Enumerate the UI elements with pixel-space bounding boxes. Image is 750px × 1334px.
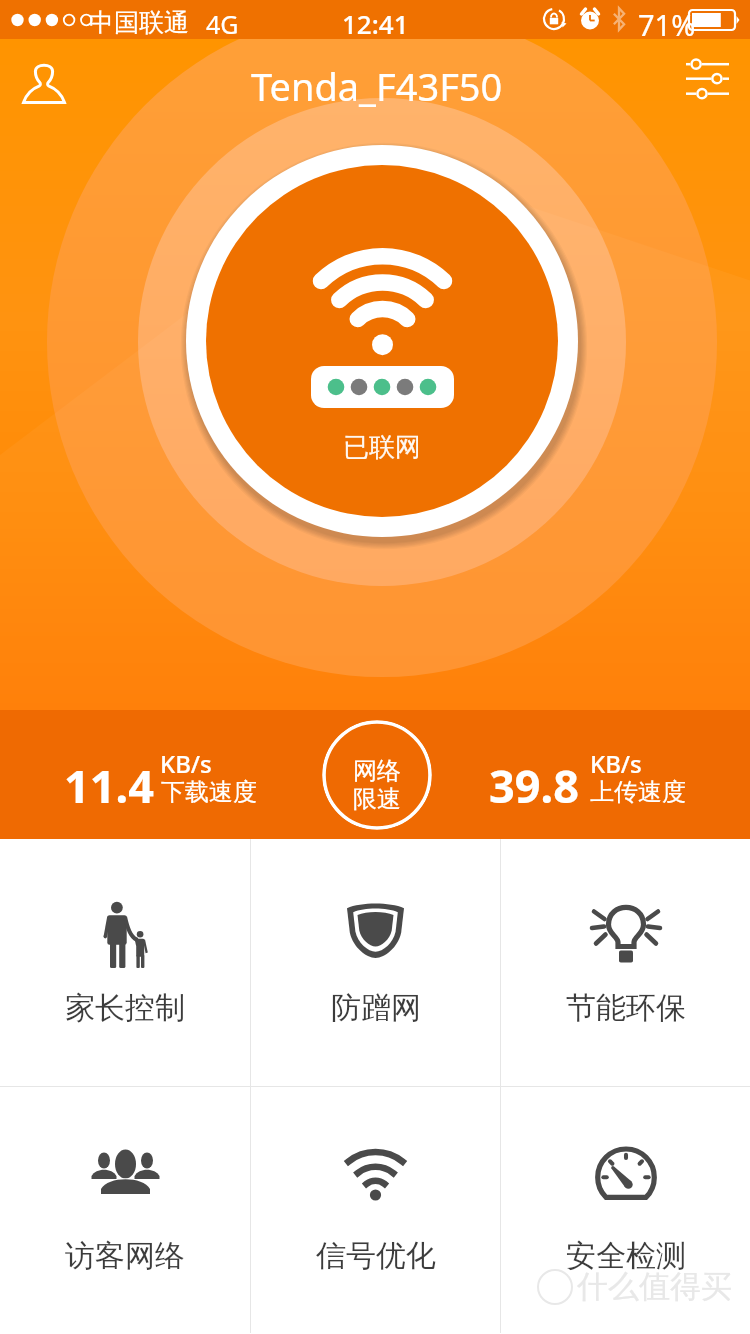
staticText: 节能环保 bbox=[566, 989, 686, 1027]
staticText: 安全检测 bbox=[566, 1237, 686, 1275]
button[interactable]: 防蹭网 bbox=[251, 839, 500, 1086]
staticText: 限速 bbox=[353, 784, 401, 814]
staticText: 71% bbox=[638, 5, 696, 44]
button[interactable]: 信号优化 bbox=[251, 1087, 500, 1333]
staticText: 什么值得买 bbox=[577, 1267, 732, 1306]
staticText: 家长控制 bbox=[65, 989, 185, 1027]
staticText: 中国联通 bbox=[89, 7, 189, 38]
staticText: 已联网 bbox=[343, 431, 421, 464]
staticText: 11.4 bbox=[64, 755, 154, 816]
button[interactable]: 11.4 bbox=[30, 732, 290, 818]
staticText: 4G bbox=[206, 7, 239, 41]
button[interactable]: 网络 bbox=[322, 720, 432, 830]
button[interactable]: 安全检测 bbox=[501, 1087, 750, 1333]
staticText: 39.8 bbox=[489, 755, 579, 816]
staticText: KB/s bbox=[160, 747, 212, 780]
button[interactable]: 访客网络 bbox=[0, 1087, 250, 1333]
staticText: 12:41 bbox=[342, 6, 409, 41]
staticText: 网络 bbox=[353, 756, 401, 786]
staticText: Tenda_F43F50 bbox=[251, 60, 503, 112]
button[interactable]: 节能环保 bbox=[501, 839, 750, 1086]
staticText: 下载速度 bbox=[161, 777, 257, 807]
staticText: 访客网络 bbox=[65, 1237, 185, 1275]
staticText: KB/s bbox=[590, 747, 642, 780]
staticText: 上传速度 bbox=[590, 777, 686, 807]
button[interactable]: Account bbox=[0, 39, 88, 125]
staticText: 信号优化 bbox=[316, 1237, 436, 1275]
button[interactable]: 家长控制 bbox=[0, 839, 250, 1086]
staticText: 防蹭网 bbox=[331, 989, 421, 1027]
button[interactable]: 已联网 bbox=[178, 137, 586, 545]
button[interactable]: 39.8 bbox=[460, 732, 720, 818]
button[interactable]: Settings bbox=[662, 39, 750, 125]
